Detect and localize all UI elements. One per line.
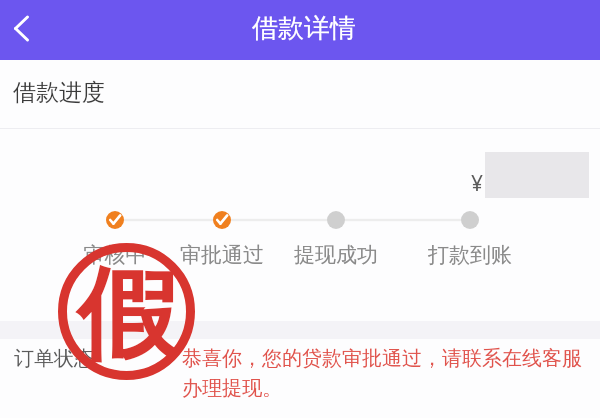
button[interactable]: 审批通过 [172, 242, 272, 268]
staticText: 审批通过 [172, 242, 272, 268]
staticText: 借款进度 [13, 78, 105, 107]
staticText: 打款到账 [420, 242, 520, 268]
staticText: 假 [77, 253, 177, 379]
button[interactable]: 提现成功 [286, 242, 386, 268]
staticText: 订单状态 [14, 346, 94, 371]
staticText: ¥ [471, 169, 484, 198]
button[interactable]: Back [0, 0, 44, 60]
staticText: 恭喜你，您的贷款审批通过，请联系在线客服办理提现。 [182, 346, 586, 401]
staticText: 审核中 [65, 242, 165, 268]
staticText: 提现成功 [286, 242, 386, 268]
staticText: 借款详情 [252, 12, 356, 45]
button[interactable]: 打款到账 [420, 242, 520, 268]
button[interactable]: 审核中 [65, 242, 165, 268]
